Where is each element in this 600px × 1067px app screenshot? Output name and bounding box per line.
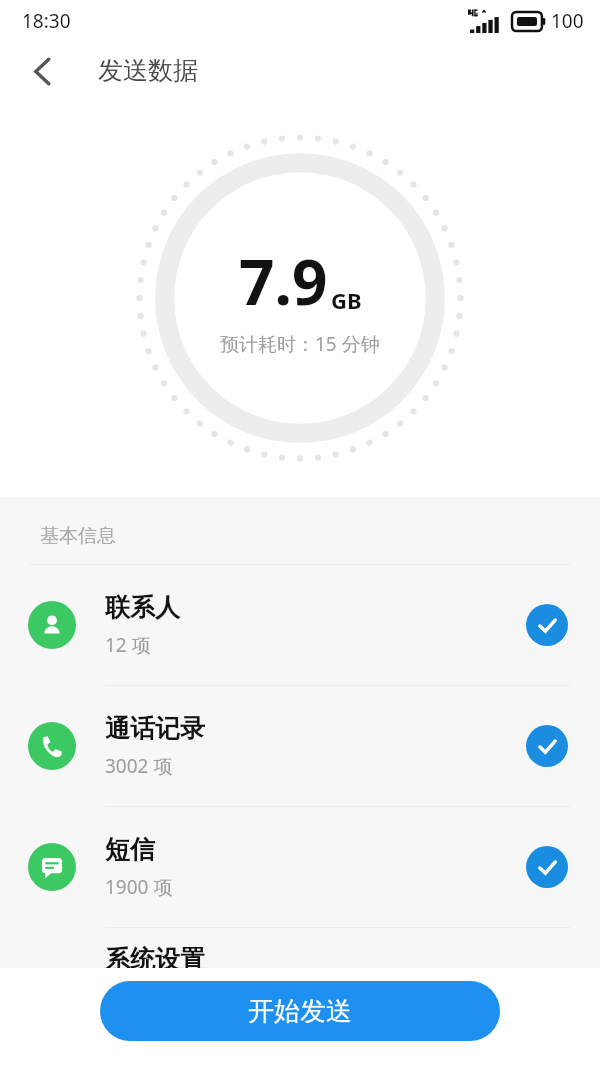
staticText: 1900 项 xyxy=(105,874,173,900)
staticText: 基本信息 xyxy=(40,524,116,548)
staticText: 18:30 xyxy=(22,8,71,34)
button[interactable]: 系统设置 xyxy=(0,928,600,988)
button[interactable]: Selected xyxy=(526,846,568,888)
staticText: 系统设置 xyxy=(105,944,205,975)
staticText: 3002 项 xyxy=(105,753,173,779)
staticText: 开始发送 xyxy=(248,995,352,1028)
staticText: GB xyxy=(331,285,362,315)
button[interactable]: 联系人 xyxy=(0,565,600,685)
staticText: 短信 xyxy=(105,834,155,865)
staticText: 100 xyxy=(551,8,584,34)
button[interactable]: Selected xyxy=(526,604,568,646)
button[interactable]: Selected xyxy=(526,725,568,767)
staticText: 7.9 xyxy=(239,239,328,323)
button[interactable]: 通话记录 xyxy=(0,686,600,806)
staticText: 联系人 xyxy=(105,592,180,623)
staticText: 发送数据 xyxy=(98,55,198,86)
button[interactable]: Back xyxy=(22,51,62,91)
button[interactable]: 开始发送 xyxy=(100,981,500,1041)
staticText: 预计耗时：15 分钟 xyxy=(220,331,380,357)
staticText: 通话记录 xyxy=(105,713,205,744)
button[interactable]: 短信 xyxy=(0,807,600,927)
staticText: 12 项 xyxy=(105,632,151,658)
